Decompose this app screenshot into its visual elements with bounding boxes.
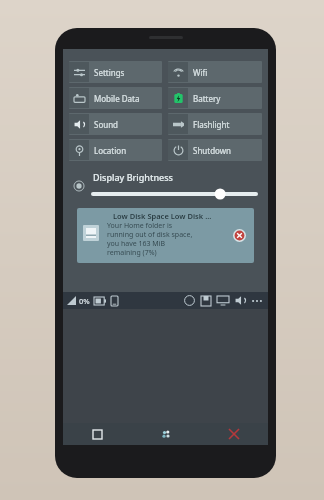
staticText: 0% [79, 296, 90, 306]
staticText: Battery [193, 93, 221, 104]
button[interactable]: Sound [69, 113, 162, 135]
staticText: Display Brightness [93, 171, 173, 183]
staticText: Sound [94, 119, 119, 130]
button[interactable]: Settings [69, 61, 162, 83]
staticText: Low Disk Space Low Disk ... [113, 211, 212, 221]
button[interactable]: Battery [168, 87, 262, 109]
button[interactable] [93, 188, 256, 200]
button[interactable]: Flashlight [168, 113, 262, 135]
staticText: Mobile Data [94, 93, 140, 104]
staticText: Settings [94, 67, 125, 78]
staticText: Your Home folder is running out of disk … [107, 221, 233, 257]
button[interactable]: Recents [63, 423, 132, 445]
button[interactable]: Close [200, 423, 268, 445]
staticText: Flashlight [193, 119, 230, 130]
button[interactable]: Dismiss notification [233, 229, 246, 242]
staticText: Location [94, 145, 127, 156]
button[interactable]: Wifi [168, 61, 262, 83]
button[interactable]: Mobile Data [69, 87, 162, 109]
button[interactable]: Home [132, 423, 200, 445]
button[interactable]: Location [69, 139, 162, 161]
staticText: Shutdown [193, 145, 231, 156]
button[interactable]: Low Disk Space Low Disk ... [77, 208, 254, 263]
button[interactable]: Notifications [184, 295, 195, 306]
staticText: Wifi [193, 67, 208, 78]
button[interactable]: Shutdown [168, 139, 262, 161]
